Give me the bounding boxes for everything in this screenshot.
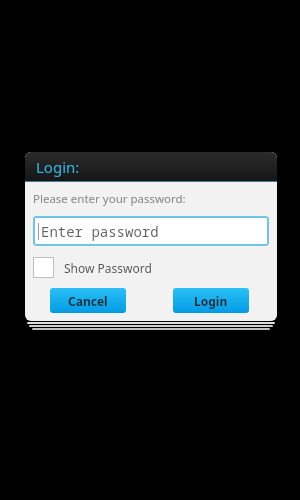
button[interactable]: Enter password <box>33 216 269 246</box>
staticText: Cancel <box>68 293 108 309</box>
staticText: Login: <box>36 157 80 177</box>
staticText: Login <box>194 293 228 309</box>
staticText: Please enter your password: <box>33 191 186 207</box>
staticText: Enter password <box>41 222 159 241</box>
staticText: Show Password <box>64 260 152 276</box>
button[interactable]: Show Password <box>33 256 152 279</box>
button[interactable]: Login <box>173 288 249 313</box>
button[interactable]: Cancel <box>50 288 126 313</box>
